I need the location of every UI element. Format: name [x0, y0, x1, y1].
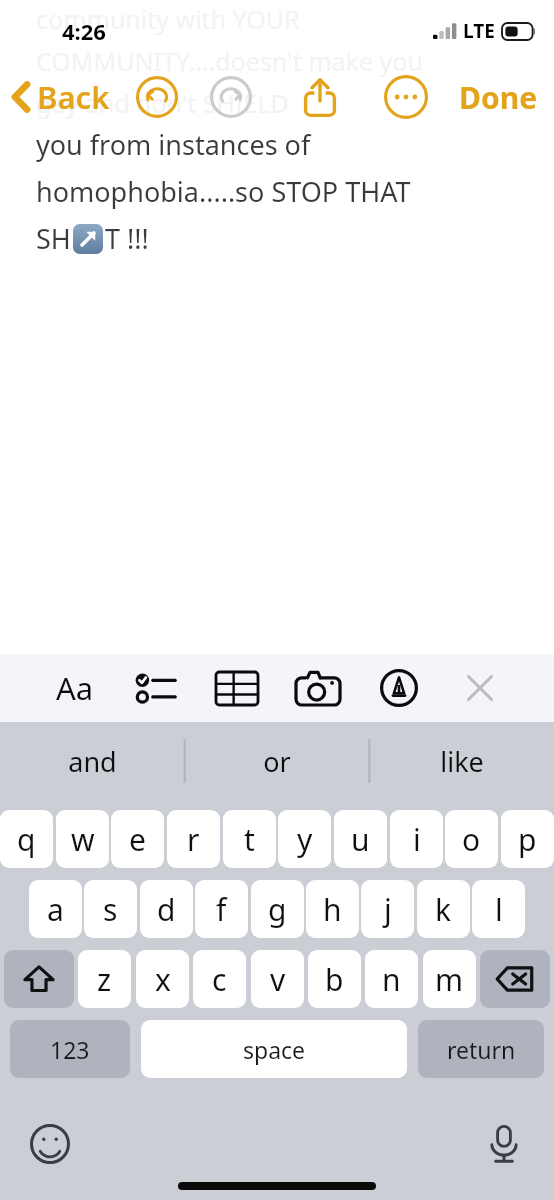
button[interactable]: b [308, 950, 361, 1008]
button[interactable]: Undo [132, 72, 182, 122]
button[interactable]: e [111, 810, 164, 868]
button[interactable]: f [195, 880, 248, 938]
staticText: h [323, 889, 342, 930]
button[interactable]: Table [196, 654, 277, 722]
staticText: w [71, 819, 95, 860]
button[interactable]: c [193, 950, 246, 1008]
staticText: return [447, 1034, 516, 1065]
staticText: c [212, 959, 227, 1000]
staticText: 123 [50, 1034, 90, 1065]
staticText: or [263, 743, 291, 780]
staticText: SH [36, 220, 71, 257]
button[interactable]: 123 [10, 1020, 130, 1078]
button[interactable]: u [334, 810, 387, 868]
staticText: COMMUNITY....doesn't make you [36, 44, 423, 78]
button[interactable]: i [390, 810, 443, 868]
staticText: x [155, 959, 171, 1000]
staticText: homophobia.....so STOP THAT [36, 173, 411, 210]
button[interactable]: d [140, 880, 193, 938]
staticText: Aa [56, 667, 94, 709]
staticText: Back [37, 76, 110, 118]
button[interactable]: r [167, 810, 220, 868]
button[interactable]: Emoji [24, 1118, 76, 1170]
staticText: z [97, 959, 112, 1000]
button[interactable]: Checklist [115, 654, 196, 722]
button[interactable]: like [369, 722, 554, 800]
button[interactable]: n [365, 950, 418, 1008]
staticText: gay and don't SHIELD [36, 86, 289, 120]
button[interactable]: s [84, 880, 137, 938]
staticText: t [244, 819, 255, 860]
staticText: s [103, 889, 118, 930]
staticText: o [462, 819, 481, 860]
staticText: Done [459, 77, 538, 118]
staticText: q [17, 819, 36, 860]
button[interactable]: p [501, 810, 554, 868]
button[interactable]: v [251, 950, 304, 1008]
button[interactable]: o [445, 810, 498, 868]
button[interactable]: q [0, 810, 53, 868]
staticText: and [68, 743, 117, 780]
staticText: u [351, 819, 370, 860]
staticText: T !!! [105, 220, 149, 257]
button[interactable]: g [251, 880, 304, 938]
staticText: like [440, 743, 484, 780]
staticText: j [384, 889, 392, 930]
button[interactable]: return [418, 1020, 544, 1078]
button[interactable]: Redo [206, 72, 256, 122]
button[interactable]: m [423, 950, 476, 1008]
button[interactable]: or [184, 722, 369, 800]
button[interactable]: x [136, 950, 189, 1008]
button[interactable]: Camera [277, 654, 358, 722]
staticText: a [47, 889, 64, 930]
button[interactable]: and [0, 722, 184, 800]
button[interactable]: t [223, 810, 276, 868]
button[interactable]: Share [294, 71, 346, 123]
staticText: y [297, 819, 313, 860]
button[interactable]: Markup [358, 654, 439, 722]
staticText: space [243, 1034, 306, 1065]
button[interactable]: z [78, 950, 131, 1008]
button[interactable]: Text format [34, 654, 115, 722]
button[interactable]: k [417, 880, 470, 938]
staticText: l [495, 889, 503, 930]
button[interactable]: Backspace [480, 950, 550, 1008]
button[interactable]: w [56, 810, 109, 868]
button[interactable]: a [29, 880, 82, 938]
staticText: r [187, 819, 200, 860]
staticText: d [157, 889, 176, 930]
staticText: p [518, 819, 537, 860]
button[interactable]: space [141, 1020, 407, 1078]
button[interactable]: y [278, 810, 331, 868]
staticText: b [325, 959, 344, 1000]
staticText: k [435, 889, 452, 930]
staticText: community with YOUR [36, 2, 300, 36]
staticText: f [216, 889, 227, 930]
button[interactable]: Close keyboard [439, 654, 520, 722]
staticText: v [270, 959, 286, 1000]
button[interactable]: j [361, 880, 414, 938]
staticText: m [435, 959, 464, 1000]
button[interactable]: Back [10, 76, 110, 118]
button[interactable]: Shift [4, 950, 74, 1008]
button[interactable]: More options [380, 71, 432, 123]
staticText: LTE [463, 18, 495, 44]
staticText: 4:26 [62, 16, 106, 46]
button[interactable]: Dictation [478, 1118, 530, 1170]
button[interactable]: l [472, 880, 525, 938]
staticText: g [268, 889, 287, 930]
staticText: i [413, 819, 421, 860]
staticText: e [129, 819, 146, 860]
staticText: n [382, 959, 401, 1000]
button[interactable]: Done [459, 77, 538, 118]
button[interactable]: h [306, 880, 359, 938]
staticText: you from instances of [36, 126, 311, 163]
